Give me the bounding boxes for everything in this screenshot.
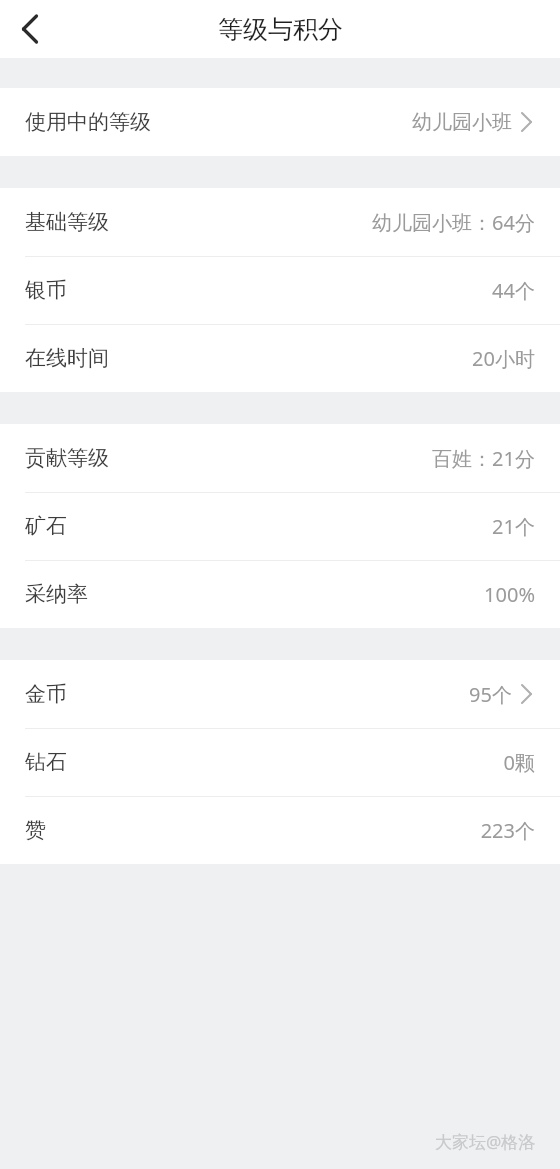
staticText: 金币 — [25, 681, 67, 707]
staticText: 223个 — [480, 817, 535, 844]
staticText: 20小时 — [472, 345, 535, 372]
staticText: 0颗 — [503, 749, 535, 776]
staticText: 21个 — [492, 513, 535, 540]
staticText: 赞 — [25, 817, 46, 843]
staticText: 95个 — [469, 681, 512, 708]
staticText: 矿石 — [25, 513, 67, 539]
staticText: 基础等级 — [25, 209, 109, 235]
staticText: 等级与积分 — [218, 14, 343, 45]
button[interactable]: 金币 — [0, 660, 560, 728]
button[interactable]: 使用中的等级 — [0, 88, 560, 156]
button[interactable]: 采纳率 — [0, 560, 560, 628]
staticText: 幼儿园小班：64分 — [372, 209, 535, 236]
button[interactable]: 在线时间 — [0, 324, 560, 392]
staticText: 44个 — [492, 277, 535, 304]
staticText: 使用中的等级 — [25, 109, 151, 135]
staticText: 大家坛@格洛 — [435, 1130, 536, 1153]
button[interactable]: 钻石 — [0, 728, 560, 796]
staticText: 百姓：21分 — [432, 445, 535, 472]
button[interactable]: 银币 — [0, 256, 560, 324]
button[interactable]: 矿石 — [0, 492, 560, 560]
staticText: 幼儿园小班 — [412, 110, 512, 135]
staticText: 银币 — [25, 277, 67, 303]
button[interactable]: 基础等级 — [0, 188, 560, 256]
staticText: 100% — [484, 581, 535, 608]
button[interactable]: 赞 — [0, 796, 560, 864]
button[interactable]: Back — [8, 7, 52, 51]
button[interactable]: 贡献等级 — [0, 424, 560, 492]
staticText: 采纳率 — [25, 581, 88, 607]
staticText: 贡献等级 — [25, 445, 109, 471]
staticText: 钻石 — [25, 749, 67, 775]
staticText: 在线时间 — [25, 345, 109, 371]
